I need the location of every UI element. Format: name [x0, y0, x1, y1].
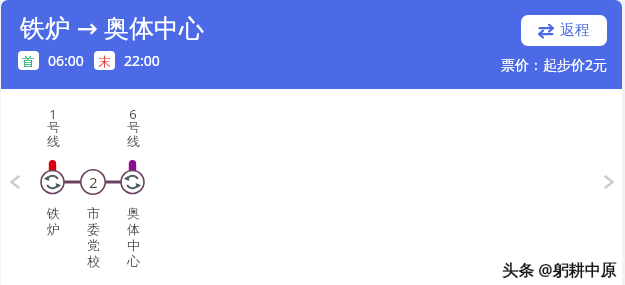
staticText: 体: [127, 221, 140, 237]
staticText: 校: [87, 253, 100, 269]
staticText: 返程: [560, 21, 590, 40]
staticText: 号: [47, 119, 60, 133]
staticText: 线: [127, 133, 140, 147]
staticText: 炉: [47, 221, 60, 237]
staticText: 党: [87, 237, 100, 253]
button[interactable]: 返程: [521, 15, 607, 46]
staticText: 22:00: [124, 51, 160, 70]
staticText: 中: [127, 237, 140, 253]
staticText: 1: [49, 105, 57, 119]
button[interactable]: Next: [598, 171, 620, 193]
staticText: 奥: [127, 205, 140, 221]
button[interactable]: Previous: [4, 171, 26, 193]
button[interactable]: 市: [83, 205, 103, 269]
staticText: 头条 @躬耕中原: [502, 259, 617, 281]
staticText: 铁: [47, 205, 60, 221]
staticText: 2: [89, 172, 98, 192]
staticText: 票价：起步价2元: [501, 55, 608, 74]
staticText: 市: [87, 205, 100, 221]
staticText: 6: [129, 105, 137, 119]
staticText: 首: [22, 53, 35, 69]
staticText: 心: [127, 253, 140, 269]
button[interactable]: 奥: [123, 205, 143, 269]
button[interactable]: 铁: [43, 205, 63, 237]
staticText: 末: [98, 53, 111, 69]
staticText: 铁炉 → 奥体中心: [20, 10, 204, 44]
staticText: 线: [47, 133, 60, 147]
staticText: 06:00: [48, 51, 84, 70]
staticText: 号: [127, 119, 140, 133]
staticText: 委: [87, 221, 100, 237]
